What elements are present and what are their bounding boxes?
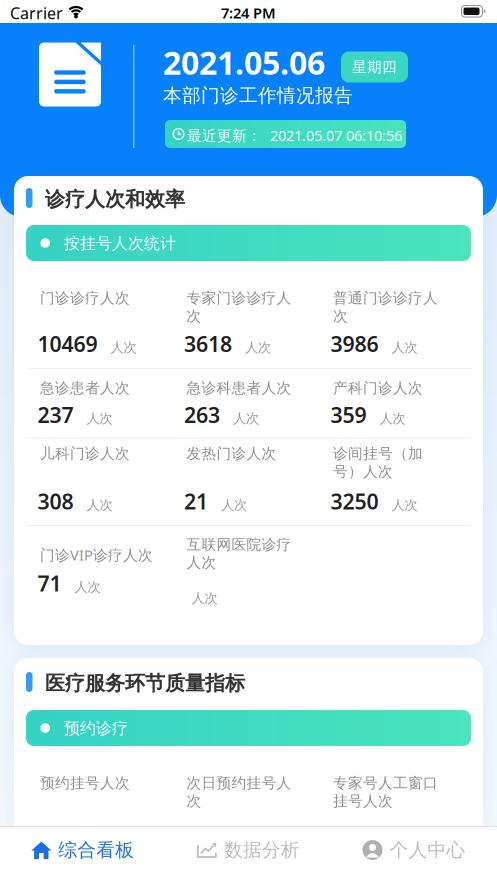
staticText: 儿科门诊人次 — [40, 445, 130, 463]
staticText: 发热门诊人次 — [186, 445, 276, 463]
staticText: 个人中心 — [389, 838, 465, 861]
staticText: 人次 — [191, 590, 217, 606]
staticText: 产科门诊人次 — [333, 379, 423, 397]
staticText: 急诊科患者人次 — [186, 379, 291, 397]
button[interactable]: 个人中心 — [331, 826, 497, 874]
staticText: 最近更新： 2021.05.07 06:10:56 — [187, 125, 402, 145]
staticText: 数据分析 — [224, 838, 300, 861]
staticText: 7:24 PM — [221, 3, 276, 22]
staticText: 263 — [184, 400, 220, 429]
staticText: 预约诊疗 — [64, 718, 128, 738]
staticText: 预约挂号人次 — [40, 774, 130, 792]
staticText: 星期四 — [352, 58, 397, 76]
staticText: 互联网医院诊疗人次 — [186, 535, 291, 571]
staticText: 普通门诊诊疗人次 — [333, 289, 438, 325]
staticText: 专家号人工窗口挂号人次 — [333, 774, 438, 810]
staticText: 人次 — [391, 497, 417, 513]
staticText: 237 — [37, 400, 73, 429]
staticText: 3250 — [330, 487, 378, 515]
staticText: 人次 — [221, 497, 247, 513]
staticText: 71 — [37, 569, 61, 597]
staticText: 人次 — [86, 497, 112, 513]
staticText: 诊疗人次和效率 — [45, 187, 185, 212]
staticText: 急诊患者人次 — [40, 379, 130, 397]
staticText: 人次 — [74, 579, 100, 595]
staticText: 2021.05.06 — [163, 41, 325, 83]
staticText: 人次 — [379, 410, 405, 427]
staticText: 10469 — [37, 329, 97, 358]
staticText: 人次 — [110, 339, 136, 356]
staticText: 综合看板 — [58, 838, 134, 861]
staticText: Carrier — [10, 2, 63, 24]
staticText: 次日预约挂号人次 — [186, 774, 291, 810]
staticText: 人次 — [86, 410, 112, 427]
staticText: 诊间挂号（加号）人次 — [333, 445, 423, 481]
staticText: 人次 — [391, 339, 417, 356]
staticText: 专家门诊诊疗人次 — [186, 289, 291, 325]
staticText: 医疗服务环节质量指标 — [45, 671, 245, 696]
staticText: 3986 — [330, 329, 378, 358]
staticText: 308 — [37, 487, 73, 515]
button[interactable]: 综合看板 — [0, 826, 166, 874]
button[interactable]: 数据分析 — [166, 826, 331, 874]
staticText: 门诊诊疗人次 — [40, 289, 130, 307]
staticText: 按挂号人次统计 — [64, 233, 176, 253]
staticText: 3618 — [184, 329, 232, 358]
staticText: 人次 — [245, 339, 271, 356]
staticText: 本部门诊工作情况报告 — [163, 84, 353, 107]
staticText: 人次 — [233, 410, 259, 427]
staticText: 359 — [330, 400, 366, 429]
staticText: 门诊VIP诊疗人次 — [40, 545, 153, 564]
staticText: 21 — [184, 487, 208, 515]
